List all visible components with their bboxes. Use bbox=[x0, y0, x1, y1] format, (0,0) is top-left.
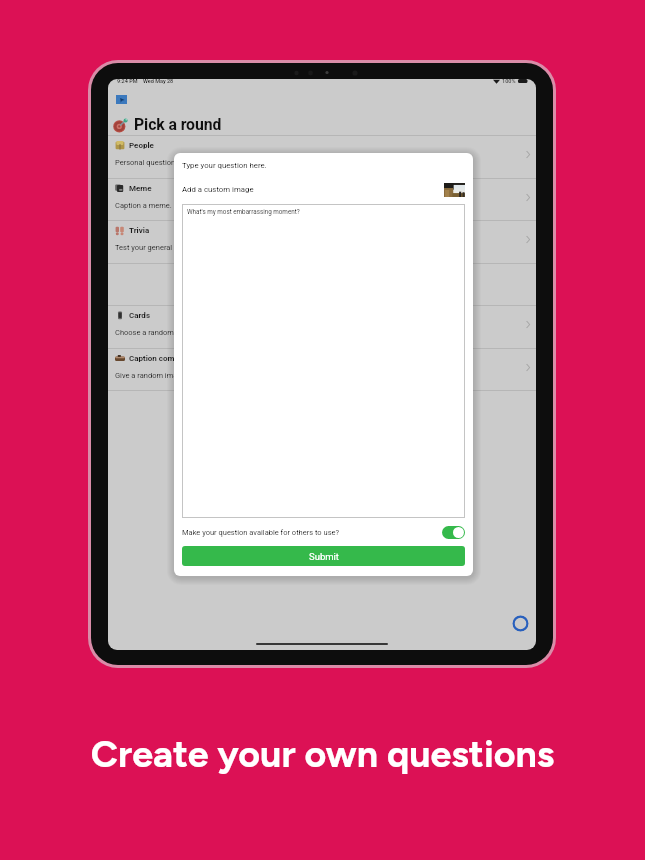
staticText: Caption a meme. bbox=[115, 201, 172, 210]
button[interactable]: Custom image bbox=[444, 183, 465, 197]
button[interactable]: Meme bbox=[108, 178, 536, 221]
staticText: Personal questions about your friends. bbox=[115, 158, 244, 167]
button[interactable]: Cards bbox=[108, 305, 536, 348]
staticText: 100% bbox=[502, 79, 516, 84]
staticText: Trivia bbox=[129, 226, 150, 235]
button[interactable]: Toggle availability bbox=[442, 526, 465, 539]
staticText: Add a custom image bbox=[182, 185, 254, 194]
staticText: Choose a random card. bbox=[115, 328, 193, 337]
staticText: Cards bbox=[129, 311, 150, 320]
button[interactable]: People bbox=[108, 135, 536, 178]
staticText: Type your question here. bbox=[182, 161, 267, 170]
staticText: Test your general knowledge. bbox=[115, 243, 213, 252]
staticText: Wed May 28 bbox=[143, 79, 174, 84]
button[interactable]: Trivia bbox=[108, 220, 536, 263]
staticText: Meme bbox=[129, 184, 152, 193]
staticText: Give a random image a caption. bbox=[115, 371, 221, 380]
button[interactable]: Back bbox=[116, 95, 127, 104]
staticText: Create your own questions bbox=[0, 731, 645, 776]
staticText: Caption competition bbox=[129, 354, 202, 363]
staticText: Pick a round bbox=[134, 115, 222, 134]
staticText: Submit bbox=[309, 551, 339, 562]
staticText: 9:24 PM bbox=[117, 79, 138, 84]
button[interactable]: Submit bbox=[182, 546, 465, 566]
staticText: What's my most embarrassing moment? bbox=[187, 208, 300, 215]
staticText: Make your question available for others … bbox=[182, 528, 340, 537]
staticText: People bbox=[129, 141, 154, 150]
button[interactable]: Add question bbox=[512, 615, 529, 632]
button[interactable]: Caption competition bbox=[108, 348, 536, 391]
